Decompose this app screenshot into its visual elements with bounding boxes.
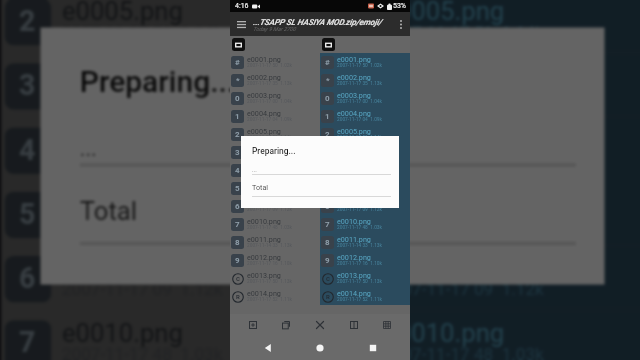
- button[interactable]: 1: [230, 107, 320, 125]
- button[interactable]: More options: [394, 12, 408, 36]
- staticText: e0010.png: [383, 317, 505, 345]
- staticText: e0006.png: [247, 145, 281, 153]
- button[interactable]: *: [230, 71, 320, 89]
- staticText: ...TSAPP SL HASIYA MOD.zip/emoji/: [253, 17, 382, 26]
- button[interactable]: 7: [322, 309, 640, 360]
- button[interactable]: 8: [230, 233, 320, 251]
- staticText: 4: [325, 166, 330, 175]
- staticText: e0010.png: [247, 217, 281, 225]
- button[interactable]: 6: [1, 245, 322, 310]
- button[interactable]: 5: [322, 181, 640, 245]
- button[interactable]: 2: [1, 0, 322, 52]
- button[interactable]: Back: [253, 335, 283, 360]
- button[interactable]: 6: [230, 197, 320, 215]
- staticText: e0011.png: [337, 235, 371, 243]
- staticText: 7: [340, 327, 358, 359]
- staticText: e0004.png: [247, 109, 281, 117]
- staticText: #: [325, 58, 330, 67]
- button[interactable]: 4: [230, 161, 320, 179]
- button[interactable]: 3: [322, 52, 640, 117]
- button[interactable]: Open navigation drawer: [230, 12, 252, 36]
- staticText: 2007-11-17 50 1.02k: [247, 63, 292, 69]
- button[interactable]: 1: [320, 107, 410, 125]
- button[interactable]: R: [230, 287, 320, 305]
- staticText: C: [236, 275, 240, 282]
- staticText: 9: [325, 256, 330, 265]
- staticText: 2007-11-17 23 1.07k: [383, 217, 544, 238]
- button[interactable]: #: [230, 53, 320, 71]
- button[interactable]: 7: [230, 215, 320, 233]
- button[interactable]: Parent folder: [230, 36, 320, 53]
- button[interactable]: 6: [322, 245, 640, 310]
- staticText: 2007-11-17 35 1.13k: [247, 81, 292, 87]
- staticText: 6: [235, 202, 240, 211]
- button[interactable]: 5: [320, 179, 410, 197]
- button[interactable]: Grid view: [376, 314, 398, 335]
- staticText: e0008.png: [247, 181, 281, 189]
- staticText: 4:16: [235, 2, 249, 10]
- button[interactable]: New folder: [242, 314, 264, 335]
- staticText: 0: [325, 94, 330, 103]
- staticText: 3: [340, 70, 358, 102]
- button[interactable]: 7: [320, 215, 410, 233]
- staticText: 1: [235, 112, 240, 121]
- button[interactable]: 4: [1, 117, 322, 181]
- staticText: e0003.png: [247, 91, 281, 99]
- staticText: 2007-11-17 51 1.14k: [383, 24, 544, 45]
- button[interactable]: Split view: [343, 314, 365, 335]
- staticText: 2007-11-17 09 1.12k: [247, 207, 292, 213]
- button[interactable]: 2: [230, 125, 320, 143]
- button[interactable]: 0: [230, 89, 320, 107]
- button[interactable]: 2: [320, 125, 410, 143]
- button[interactable]: Copy: [275, 314, 297, 335]
- button[interactable]: Cancel: [309, 314, 331, 335]
- staticText: 7: [325, 220, 330, 229]
- button[interactable]: 9: [230, 251, 320, 269]
- staticText: 2007-11-17 52 1.11k: [247, 297, 292, 303]
- staticText: e0005.png: [383, 0, 505, 24]
- button[interactable]: 5: [1, 181, 322, 245]
- button[interactable]: Parent folder: [320, 36, 410, 53]
- button[interactable]: C: [230, 269, 320, 287]
- staticText: e0001.png: [247, 55, 281, 63]
- button[interactable]: 9: [320, 251, 410, 269]
- button[interactable]: 3: [230, 143, 320, 161]
- button[interactable]: 5: [230, 179, 320, 197]
- staticText: 2: [19, 6, 37, 38]
- button[interactable]: 0: [320, 89, 410, 107]
- staticText: 6: [340, 263, 358, 295]
- button[interactable]: Recent apps: [358, 335, 388, 360]
- staticText: 2007-11-17 23 1.07k: [247, 189, 292, 195]
- button[interactable]: R: [320, 287, 410, 305]
- staticText: e0013.png: [247, 271, 281, 279]
- button[interactable]: 3: [1, 52, 322, 117]
- staticText: 9: [235, 256, 240, 265]
- button[interactable]: *: [320, 71, 410, 89]
- button[interactable]: C: [320, 269, 410, 287]
- staticText: *: [236, 76, 240, 85]
- staticText: 2007-11-17 16 1.10k: [337, 261, 382, 267]
- staticText: C: [326, 275, 330, 282]
- button[interactable]: 7: [1, 309, 322, 360]
- button[interactable]: 4: [322, 117, 640, 181]
- button[interactable]: 3: [320, 143, 410, 161]
- button[interactable]: 8: [320, 233, 410, 251]
- button[interactable]: 4: [320, 161, 410, 179]
- staticText: Preparing...: [252, 146, 296, 156]
- staticText: e0012.png: [247, 253, 281, 261]
- staticText: e0014.png: [247, 289, 281, 297]
- button[interactable]: Home: [305, 335, 335, 360]
- staticText: Total: [80, 195, 140, 224]
- staticText: 2007-11-17 09 1.12k: [383, 281, 544, 302]
- button[interactable]: 6: [320, 197, 410, 215]
- staticText: 2007-11-17 17 1.11k: [383, 152, 544, 174]
- staticText: e0006.png: [62, 60, 183, 88]
- button[interactable]: 2: [322, 0, 640, 52]
- button[interactable]: #: [320, 53, 410, 71]
- staticText: 4: [235, 166, 240, 175]
